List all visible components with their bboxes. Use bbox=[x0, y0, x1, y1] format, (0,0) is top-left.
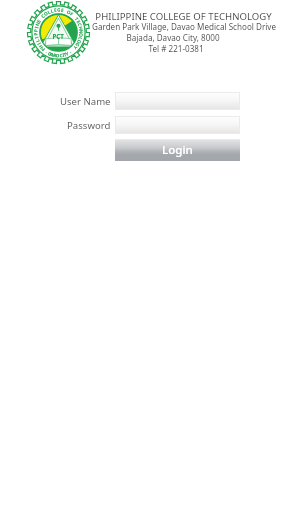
staticText: PHILIPPINE COLLEGE OF TECHNOLOGY bbox=[95, 10, 272, 23]
button[interactable] bbox=[115, 92, 240, 110]
button[interactable]: Login bbox=[115, 139, 240, 161]
staticText: Password bbox=[67, 119, 111, 132]
staticText: Tel # 221-0381 bbox=[148, 43, 204, 54]
staticText: User Name bbox=[60, 95, 111, 108]
staticText: Login bbox=[162, 142, 193, 158]
button[interactable] bbox=[115, 116, 240, 134]
staticText: Bajada, Davao City, 8000 bbox=[126, 32, 220, 43]
staticText: Garden Park Village, Davao Medical Schoo… bbox=[92, 21, 276, 32]
